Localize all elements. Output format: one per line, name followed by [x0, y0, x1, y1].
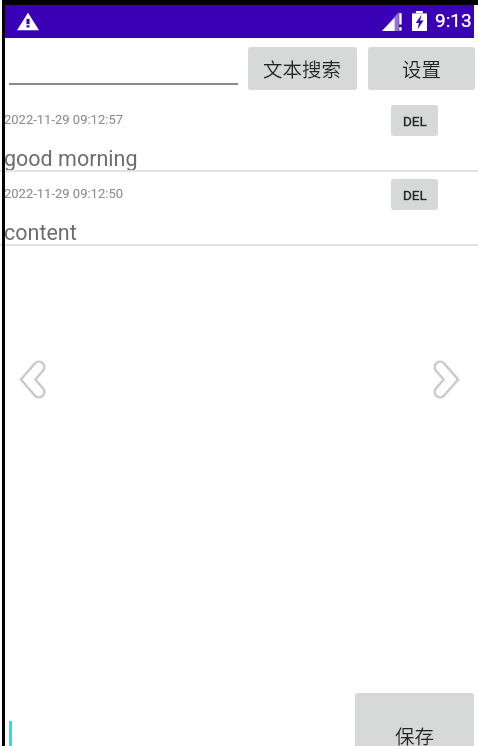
button[interactable]: Next page [429, 356, 462, 403]
staticText: 2022-11-29 09:12:57 [4, 112, 123, 127]
button[interactable]: 保存 [355, 693, 474, 746]
staticText: DEL [403, 187, 427, 203]
staticText: DEL [403, 113, 427, 129]
button[interactable]: DEL [391, 179, 438, 210]
staticText: good morning [4, 146, 138, 171]
button[interactable]: 设置 [368, 47, 475, 90]
button[interactable]: 2022-11-29 09:12:50 [0, 171, 478, 246]
staticText: 文本搜索 [263, 54, 342, 82]
button[interactable]: 文本搜索 [248, 47, 357, 90]
button[interactable]: Search text field [5, 45, 238, 85]
button[interactable]: DEL [391, 105, 438, 136]
staticText: 2022-11-29 09:12:50 [4, 186, 123, 201]
button[interactable]: 2022-11-29 09:12:57 [0, 97, 478, 172]
staticText: 设置 [402, 54, 442, 82]
staticText: content [4, 220, 77, 245]
button[interactable]: Previous page [17, 356, 50, 403]
staticText: 9:13 [435, 9, 472, 31]
staticText: 保存 [395, 721, 435, 746]
